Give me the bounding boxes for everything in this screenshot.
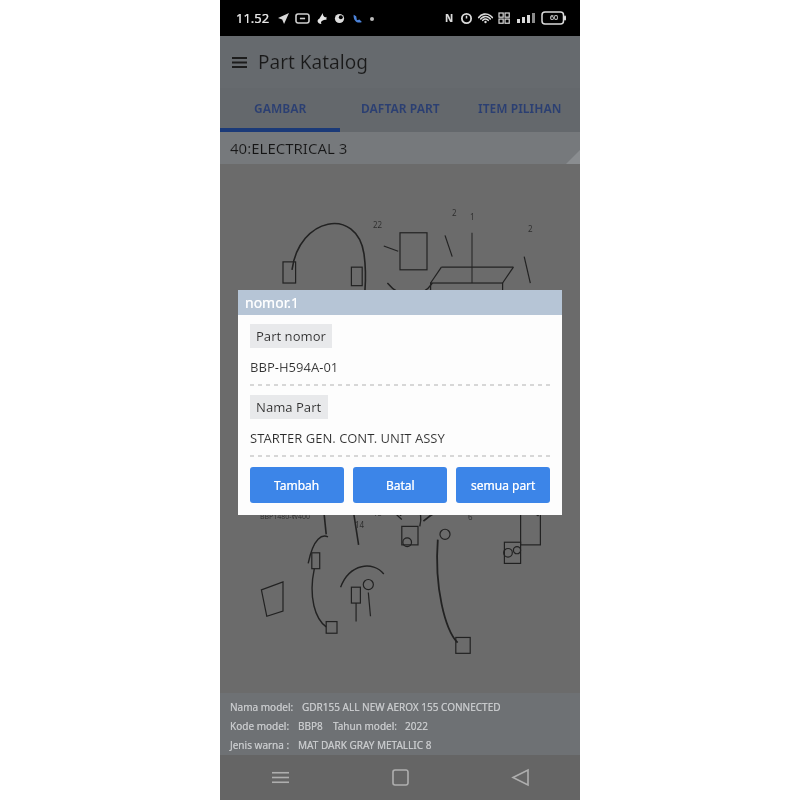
staticText: Kode model:: [230, 719, 290, 733]
staticText: Jenis warna :: [230, 738, 290, 752]
button[interactable]: Recent apps: [220, 755, 340, 800]
staticText: Part Katalog: [258, 49, 368, 75]
staticText: 11.52: [236, 9, 270, 27]
staticText: 2: [452, 207, 457, 218]
staticText: 13: [294, 434, 304, 445]
button[interactable]: Home: [340, 755, 460, 800]
staticText: 12: [247, 434, 257, 445]
staticText: 2022: [405, 719, 428, 733]
button[interactable]: Open navigation menu: [222, 45, 256, 79]
staticText: Batal: [386, 477, 415, 493]
staticText: Tahun model:: [333, 719, 397, 733]
button[interactable]: Batal: [353, 467, 447, 503]
staticText: Nama model:: [230, 700, 294, 714]
staticText: 40:ELECTRICAL 3: [230, 138, 348, 158]
staticText: 16: [405, 462, 415, 473]
staticText: Tambah: [274, 477, 320, 493]
staticText: 10: [269, 434, 279, 445]
staticText: semua part: [471, 477, 536, 493]
staticText: 19: [423, 385, 433, 396]
staticText: nomor.1: [245, 293, 299, 312]
button[interactable]: GAMBAR: [220, 88, 340, 128]
staticText: STARTER GEN. CONT. UNIT ASSY: [250, 429, 445, 447]
staticText: Nama Part: [256, 398, 322, 416]
staticText: GAMBAR: [254, 100, 307, 116]
staticText: 14: [355, 519, 365, 530]
staticText: GDR155 ALL NEW AEROX 155 CONNECTED: [302, 700, 501, 714]
staticText: 21: [531, 448, 541, 459]
staticText: 60: [550, 13, 559, 23]
staticText: 11: [283, 412, 293, 423]
staticText: N: [445, 11, 454, 25]
button[interactable]: ITEM PILIHAN: [460, 88, 580, 128]
button[interactable]: DAFTAR PART: [340, 88, 460, 128]
staticText: 2: [528, 223, 533, 234]
staticText: BBP-H594A-01: [250, 358, 339, 376]
staticText: 7: [434, 450, 439, 461]
staticText: BBP8: [298, 719, 323, 733]
staticText: 17: [387, 442, 397, 453]
staticText: ITEM PILIHAN: [478, 100, 562, 116]
button[interactable]: Tambah: [250, 467, 344, 503]
staticText: 21: [492, 446, 502, 457]
staticText: BBP1480-W400: [260, 512, 311, 522]
button[interactable]: Back: [460, 755, 580, 800]
staticText: 22: [373, 219, 383, 230]
staticText: 1: [470, 211, 475, 222]
staticText: 15: [373, 507, 383, 518]
button[interactable]: semua part: [456, 467, 550, 503]
staticText: MAT DARK GRAY METALLIC 8: [298, 738, 432, 752]
staticText: Part nomor: [256, 327, 326, 345]
staticText: DAFTAR PART: [361, 100, 440, 116]
staticText: 6: [468, 511, 473, 522]
